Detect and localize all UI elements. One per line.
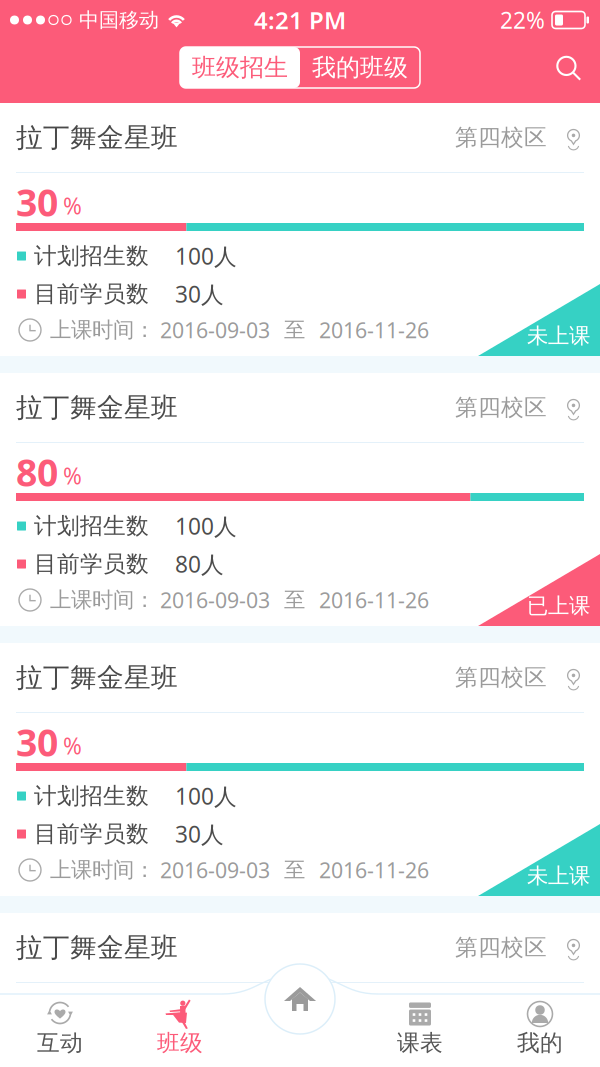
staticText: 22%	[500, 5, 545, 35]
button[interactable]: 拉丁舞金星班	[0, 373, 600, 626]
staticText: 2016-11-26	[319, 856, 429, 884]
staticText: 我的	[517, 1029, 563, 1057]
staticText: 拉丁舞金星班	[16, 931, 178, 964]
staticText: 计划招生数	[34, 1052, 149, 1067]
button[interactable]: 我的班级	[300, 47, 420, 88]
staticText: 2016-11-26	[319, 316, 429, 344]
staticText: 计划招生数	[34, 512, 149, 540]
button[interactable]: 我的	[480, 999, 600, 1067]
button[interactable]: 拉丁舞金星班	[0, 103, 600, 356]
button[interactable]: 班级	[120, 999, 240, 1067]
staticText: 课表	[397, 1029, 443, 1057]
button[interactable]: 拉丁舞金星班	[0, 913, 600, 1067]
staticText: 100人	[175, 1051, 237, 1067]
staticText: 至	[284, 317, 305, 343]
staticText: 目前学员数	[34, 820, 149, 848]
staticText: %	[63, 731, 82, 761]
staticText: 未上课	[527, 323, 590, 349]
staticText: %	[63, 191, 82, 221]
staticText: 计划招生数	[34, 242, 149, 270]
button[interactable]: 拉丁舞金星班	[0, 643, 600, 896]
staticText: %	[63, 461, 82, 491]
staticText: 2016-11-26	[319, 586, 429, 614]
staticText: 互动	[37, 1029, 83, 1057]
staticText: 2016-09-03	[160, 316, 270, 344]
staticText: 中国移动	[79, 8, 159, 32]
staticText: 80	[16, 447, 58, 497]
button[interactable]: 班级招生	[180, 47, 300, 88]
staticText: 30	[16, 177, 58, 227]
staticText: 拉丁舞金星班	[16, 121, 178, 154]
staticText: 30人	[175, 819, 224, 849]
staticText: 第四校区	[455, 934, 547, 961]
staticText: 上课时间：	[50, 317, 155, 343]
button[interactable]: Search	[542, 41, 596, 95]
staticText: 30人	[175, 279, 224, 309]
staticText: %	[63, 1001, 82, 1031]
staticText: 80人	[175, 549, 224, 579]
staticText: 拉丁舞金星班	[16, 391, 178, 424]
staticText: 100人	[175, 781, 237, 811]
staticText: 班级	[157, 1029, 203, 1057]
staticText: 未上课	[527, 863, 590, 889]
staticText: 第四校区	[455, 124, 547, 151]
staticText: 已上课	[527, 593, 590, 619]
staticText: 第四校区	[455, 664, 547, 691]
button[interactable]: 课表	[360, 999, 480, 1067]
button[interactable]: Home	[265, 964, 335, 1034]
staticText: 班级招生	[192, 53, 288, 82]
button[interactable]: 互动	[0, 999, 120, 1067]
staticText: 上课时间：	[50, 857, 155, 883]
staticText: 上课时间：	[50, 587, 155, 613]
staticText: 30	[16, 717, 58, 767]
staticText: 第四校区	[455, 394, 547, 421]
staticText: 至	[284, 587, 305, 613]
staticText: 我的班级	[312, 53, 408, 82]
staticText: 100人	[175, 511, 237, 541]
staticText: 目前学员数	[34, 550, 149, 578]
staticText: 2016-09-03	[160, 856, 270, 884]
staticText: 100人	[175, 241, 237, 271]
staticText: 拉丁舞金星班	[16, 661, 178, 694]
staticText: 4:21 PM	[254, 4, 346, 36]
staticText: 目前学员数	[34, 280, 149, 308]
staticText: 30	[16, 987, 58, 1037]
staticText: 计划招生数	[34, 782, 149, 810]
staticText: 2016-09-03	[160, 586, 270, 614]
staticText: 至	[284, 857, 305, 883]
